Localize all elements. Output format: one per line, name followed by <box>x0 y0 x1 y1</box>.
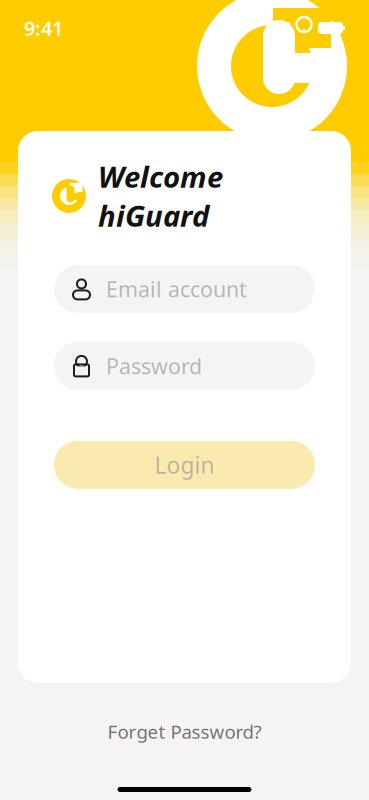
button[interactable]: Password <box>54 342 315 390</box>
staticText: Email account <box>106 275 247 303</box>
staticText: Forget Password? <box>107 719 261 744</box>
button[interactable]: Login <box>54 441 315 489</box>
button[interactable]: Forget Password? <box>93 713 275 750</box>
staticText: 9:41 <box>24 15 63 41</box>
staticText: Login <box>154 450 214 480</box>
staticText: Welcome hiGuard <box>98 157 223 235</box>
staticText: Password <box>106 352 202 380</box>
button[interactable]: Email account <box>54 265 315 313</box>
